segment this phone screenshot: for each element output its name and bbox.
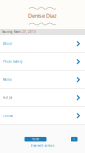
staticText: Photo Gallery (3, 60, 22, 63)
button[interactable]: Photo Gallery (0, 53, 85, 70)
button[interactable]: Contact (0, 107, 85, 124)
button[interactable]: View web version (30, 141, 54, 147)
button[interactable]: Next (71, 137, 77, 141)
staticText: Saturday, March 23, 2013 (2, 30, 36, 34)
staticText: Media (3, 78, 11, 81)
staticText: Denise Diaz (28, 12, 57, 19)
staticText: View web version (30, 144, 54, 147)
button[interactable]: Media (0, 71, 85, 88)
button[interactable]: About (0, 35, 85, 52)
staticText: Fed Jal (3, 96, 12, 99)
staticText: About (3, 42, 12, 45)
button[interactable]: Home (24, 137, 46, 141)
staticText: > (73, 137, 75, 141)
staticText: Contact (3, 114, 13, 117)
button[interactable]: Fed Jal (0, 89, 85, 106)
staticText: Home (31, 137, 39, 141)
